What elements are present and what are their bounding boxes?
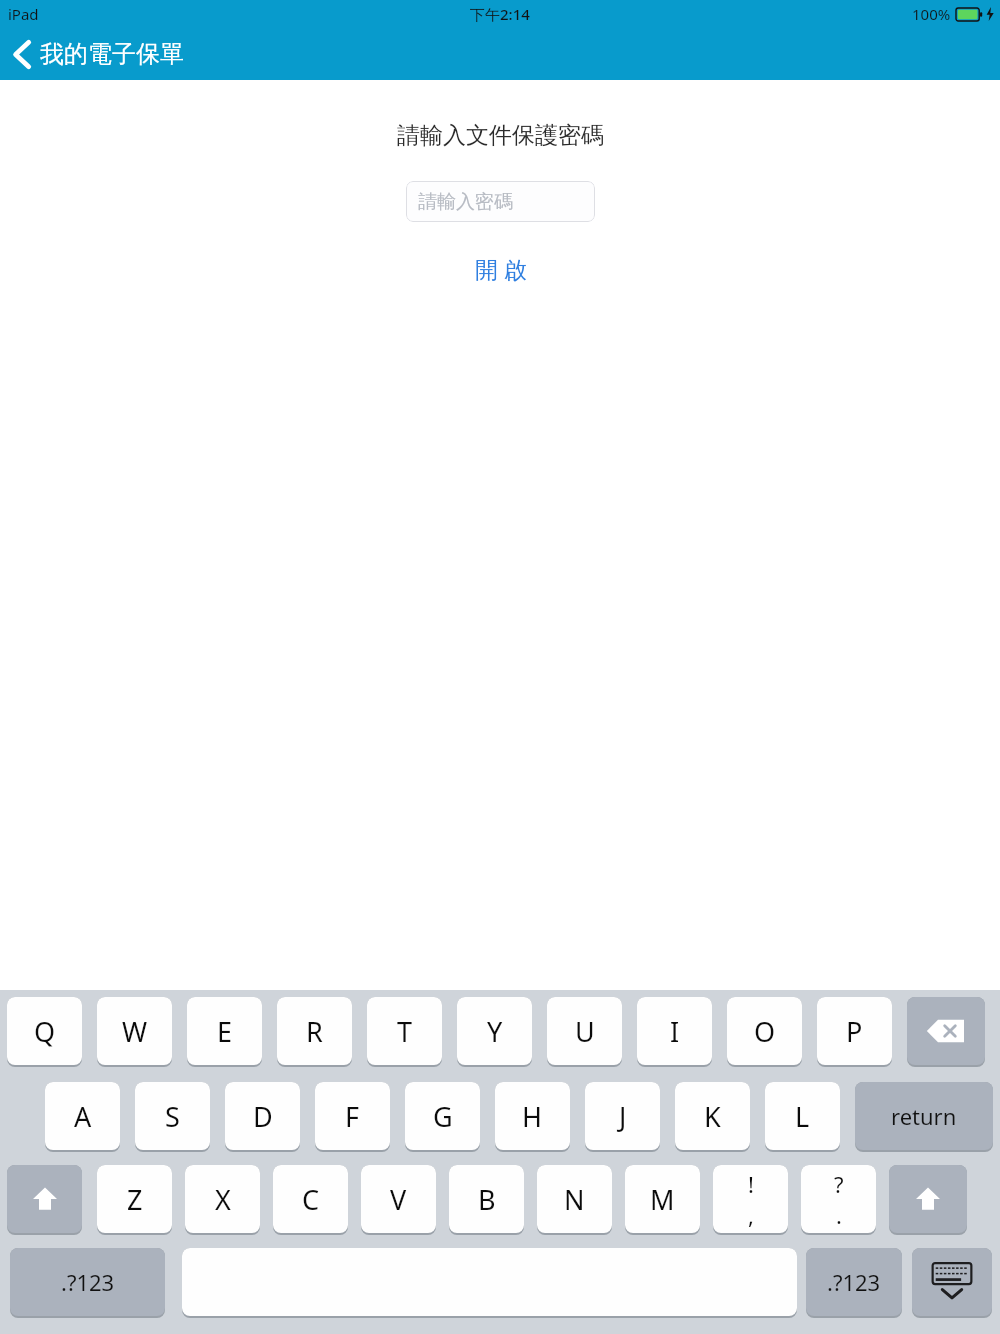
staticText: P (846, 1013, 863, 1050)
button[interactable]: V (361, 1165, 436, 1233)
staticText: B (478, 1181, 496, 1218)
button[interactable]: F (315, 1082, 390, 1150)
staticText: 請輸入密碼 (418, 190, 513, 214)
staticText: N (564, 1181, 585, 1218)
button[interactable]: C (273, 1165, 348, 1233)
other: Back (14, 41, 30, 68)
staticText: Q (34, 1013, 56, 1050)
button[interactable]: X (185, 1165, 260, 1233)
staticText: F (345, 1098, 360, 1135)
staticText: 下午2:14 (470, 4, 530, 24)
staticText: G (433, 1098, 453, 1135)
button[interactable]: Z (97, 1165, 172, 1233)
button[interactable]: L (765, 1082, 840, 1150)
button[interactable]: return (855, 1082, 993, 1150)
staticText: 100% (912, 4, 951, 24)
staticText: I (670, 1013, 680, 1050)
button[interactable]: Back (0, 33, 198, 75)
staticText: , (748, 1200, 754, 1230)
staticText: R (306, 1013, 323, 1050)
staticText: E (217, 1013, 233, 1050)
button[interactable]: Q (7, 997, 82, 1065)
button[interactable]: Shift (889, 1165, 967, 1233)
button[interactable]: ? (801, 1165, 876, 1233)
staticText: Y (487, 1013, 503, 1050)
staticText: T (397, 1013, 413, 1050)
staticText: H (522, 1098, 543, 1135)
staticText: 請輸入文件保護密碼 (397, 121, 604, 150)
button[interactable]: P (817, 997, 892, 1065)
staticText: ! (748, 1169, 754, 1199)
button[interactable]: J (585, 1082, 660, 1150)
button[interactable]: Shift (7, 1165, 82, 1233)
button[interactable]: M (625, 1165, 700, 1233)
button[interactable]: A (45, 1082, 120, 1150)
staticText: 我的電子保單 (40, 39, 184, 69)
staticText: V (390, 1181, 407, 1218)
button[interactable]: .?123 (806, 1248, 902, 1316)
button[interactable]: D (225, 1082, 300, 1150)
button[interactable]: S (135, 1082, 210, 1150)
staticText: 開 啟 (475, 253, 527, 284)
staticText: .?123 (61, 1267, 115, 1297)
staticText: S (165, 1098, 180, 1135)
button[interactable]: U (547, 997, 622, 1065)
staticText: iPad (8, 4, 39, 24)
button[interactable]: 開 啟 (455, 247, 547, 290)
button[interactable]: Y (457, 997, 532, 1065)
staticText: O (754, 1013, 776, 1050)
staticText: X (215, 1181, 231, 1218)
button[interactable]: T (367, 997, 442, 1065)
staticText: W (122, 1013, 148, 1050)
staticText: D (253, 1098, 273, 1135)
staticText: . (836, 1200, 842, 1230)
staticText: return (891, 1101, 957, 1131)
button[interactable]: R (277, 997, 352, 1065)
staticText: A (74, 1098, 92, 1135)
button[interactable]: G (405, 1082, 480, 1150)
button[interactable]: ! (713, 1165, 788, 1233)
staticText: M (650, 1181, 675, 1218)
staticText: K (704, 1098, 721, 1135)
button[interactable]: N (537, 1165, 612, 1233)
staticText: .?123 (827, 1267, 881, 1297)
button[interactable]: Hide keyboard (912, 1248, 992, 1316)
button[interactable]: O (727, 997, 802, 1065)
button[interactable]: 請輸入密碼 (406, 181, 595, 222)
staticText: L (795, 1098, 810, 1135)
button[interactable]: E (187, 997, 262, 1065)
button[interactable]: K (675, 1082, 750, 1150)
button[interactable]: .?123 (10, 1248, 165, 1316)
staticText: C (302, 1181, 320, 1218)
staticText: U (575, 1013, 595, 1050)
staticText: Z (127, 1181, 143, 1218)
button[interactable]: Delete (907, 997, 985, 1065)
staticText: J (619, 1098, 627, 1135)
button[interactable]: W (97, 997, 172, 1065)
button[interactable]: H (495, 1082, 570, 1150)
staticText: ? (834, 1169, 844, 1199)
button[interactable]: I (637, 997, 712, 1065)
button[interactable]: B (449, 1165, 524, 1233)
